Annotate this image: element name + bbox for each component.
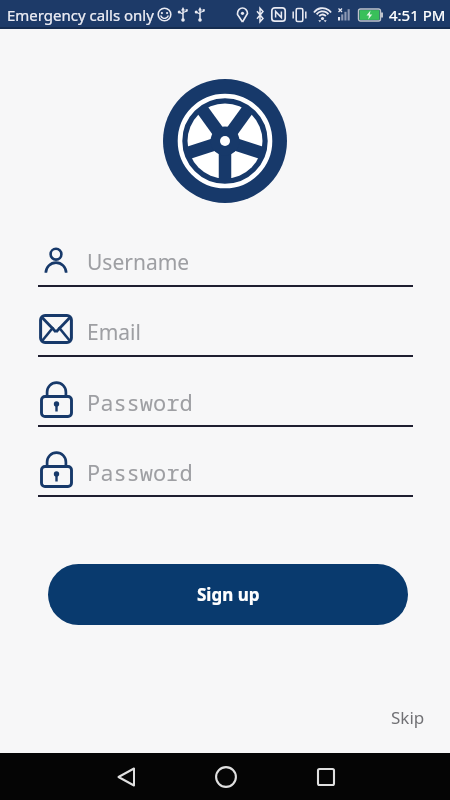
staticText: Email	[87, 318, 141, 347]
button[interactable]: Password	[0, 427, 450, 497]
staticText: 4:51 PM	[389, 5, 446, 25]
button[interactable]	[106, 757, 146, 797]
button[interactable]	[306, 757, 346, 797]
button[interactable]: Sign up	[48, 564, 408, 625]
staticText: Password	[87, 457, 193, 487]
staticText: Password	[87, 387, 193, 417]
button[interactable]: Email	[0, 287, 450, 357]
button[interactable]: Skip	[391, 706, 425, 729]
button[interactable]: Password	[0, 357, 450, 427]
staticText: Sign up	[197, 583, 260, 606]
button[interactable]: Username	[0, 247, 450, 287]
staticText: Emergency calls only	[7, 5, 154, 25]
staticText: Username	[87, 248, 190, 277]
button[interactable]	[206, 757, 246, 797]
staticText: Skip	[391, 706, 425, 729]
